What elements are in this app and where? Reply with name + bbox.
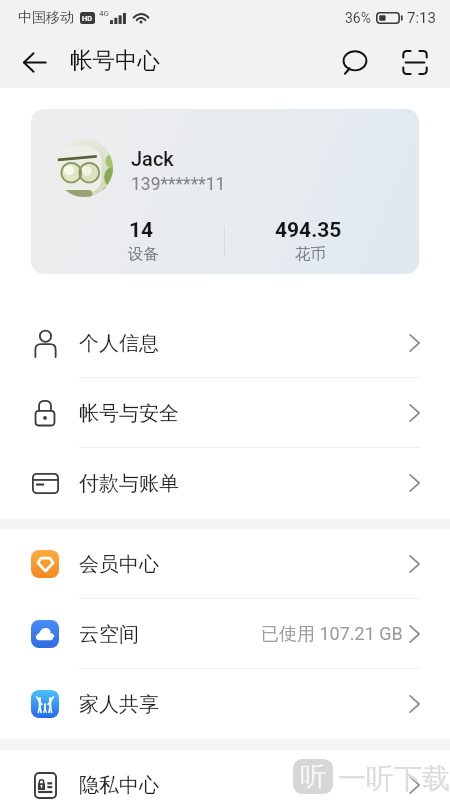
button[interactable]: 付款与账单 <box>0 448 450 518</box>
staticText: 设备 <box>128 244 159 264</box>
staticText: 云空间 <box>79 622 139 647</box>
staticText: 7:13 <box>407 9 436 27</box>
staticText: 中国移动 <box>18 9 74 27</box>
staticText: Jack <box>131 147 174 170</box>
staticText: 帐号与安全 <box>79 401 179 426</box>
button[interactable]: 个人信息 <box>0 308 450 378</box>
staticText: 会员中心 <box>79 552 159 577</box>
button[interactable]: 云空间 <box>0 599 450 669</box>
staticText: 4G <box>99 9 109 18</box>
button[interactable]: Messages <box>333 40 377 84</box>
staticText: 一听下载 <box>338 761 450 796</box>
button[interactable]: Back <box>12 40 56 84</box>
button[interactable]: Scan <box>393 40 437 84</box>
button[interactable]: 会员中心 <box>0 529 450 599</box>
button[interactable]: 帐号与安全 <box>0 378 450 448</box>
staticText: 14 <box>129 218 154 243</box>
staticText: 家人共享 <box>79 692 159 717</box>
staticText: 帐号中心 <box>70 46 160 74</box>
staticText: 已使用 107.21 GB <box>261 623 403 646</box>
staticText: HD <box>82 14 93 23</box>
button[interactable]: Jack <box>31 109 419 274</box>
button[interactable]: 家人共享 <box>0 669 450 739</box>
staticText: 36% <box>345 10 371 26</box>
staticText: 494.35 <box>275 218 342 243</box>
staticText: 付款与账单 <box>79 471 179 496</box>
button[interactable]: 14 <box>58 218 224 264</box>
staticText: 花币 <box>295 244 326 264</box>
staticText: 隐私中心 <box>79 773 159 798</box>
staticText: 139******11 <box>131 174 226 195</box>
button[interactable]: 隐私中心 <box>0 750 450 800</box>
button[interactable]: 494.35 <box>225 218 391 264</box>
staticText: 个人信息 <box>79 331 159 356</box>
staticText: 听 <box>300 760 326 793</box>
